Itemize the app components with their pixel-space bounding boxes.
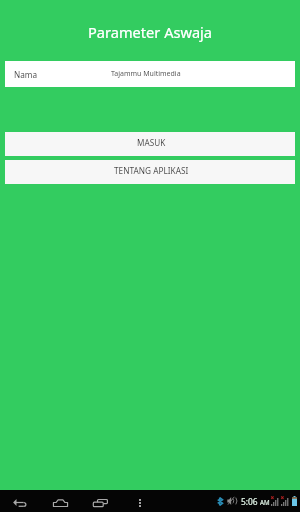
staticText: Tajammu Multimedia <box>111 69 181 79</box>
button[interactable]: Home <box>46 492 74 512</box>
staticText: TENTANG APLIKASI <box>114 165 189 176</box>
staticText: Parameter Aswaja <box>88 22 213 42</box>
button[interactable]: Back <box>6 491 34 512</box>
staticText: MASUK <box>137 137 166 148</box>
button[interactable]: TENTANG APLIKASI <box>5 160 295 184</box>
button[interactable]: More options <box>128 492 152 512</box>
staticText: 5:06 <box>241 496 258 507</box>
button[interactable]: MASUK <box>5 132 295 156</box>
staticText: AM <box>260 498 270 506</box>
button[interactable]: Nama <box>5 61 295 87</box>
staticText: Nama <box>14 69 38 80</box>
button[interactable]: Recent apps <box>86 492 114 512</box>
